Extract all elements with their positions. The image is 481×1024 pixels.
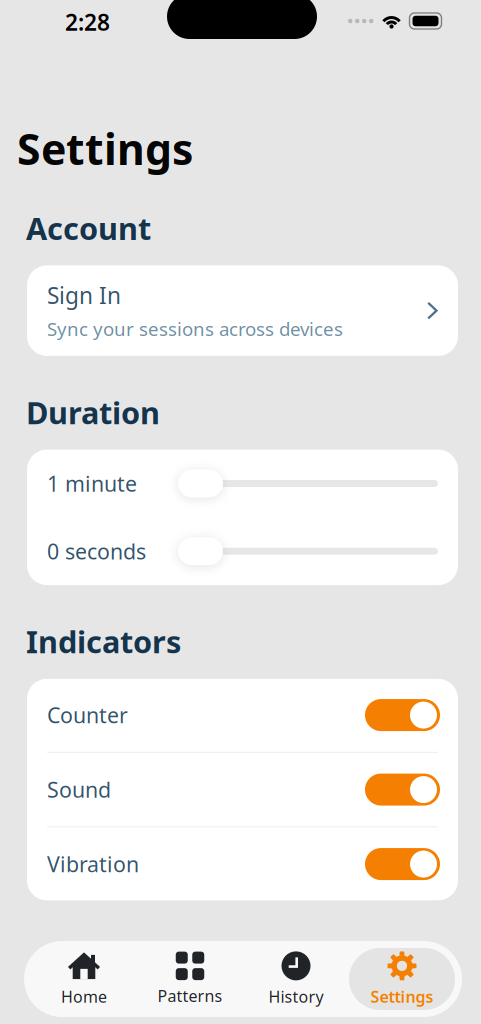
staticText: Settings: [17, 120, 193, 177]
staticText: Counter: [47, 701, 128, 729]
staticText: Duration: [26, 392, 160, 433]
staticText: Patterns: [157, 985, 222, 1006]
staticText: Settings: [370, 986, 433, 1007]
staticText: Indicators: [26, 621, 181, 662]
button[interactable]: Patterns: [137, 948, 243, 1010]
button[interactable]: Sign In: [27, 265, 458, 356]
staticText: 1 minute: [47, 469, 137, 498]
button[interactable]: Counter: [27, 678, 458, 752]
staticText: History: [268, 986, 323, 1007]
staticText: 2:28: [65, 7, 110, 37]
button[interactable]: History: [243, 948, 349, 1010]
staticText: 0 seconds: [47, 537, 146, 565]
staticText: Vibration: [47, 850, 139, 878]
button[interactable]: Home: [31, 948, 137, 1010]
staticText: Home: [61, 986, 107, 1007]
button[interactable]: Settings: [349, 948, 455, 1010]
staticText: Sign In: [47, 280, 121, 310]
button[interactable]: Vibration: [27, 827, 458, 901]
staticText: Sound: [47, 775, 111, 804]
button[interactable]: Sound: [27, 753, 458, 826]
staticText: Sync your sessions across devices: [47, 316, 343, 341]
staticText: Account: [26, 208, 151, 248]
